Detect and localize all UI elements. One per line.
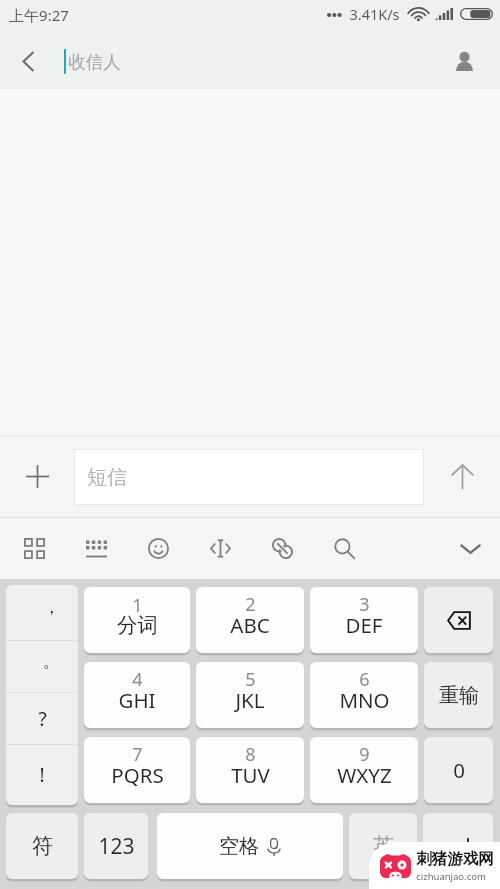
staticText: 4 [132, 667, 143, 692]
button[interactable]: 2 [196, 587, 304, 653]
other: Enter [447, 838, 469, 854]
staticText: 短信 [87, 465, 127, 490]
staticText: 1 [132, 593, 143, 618]
staticText: 3.41K/s [349, 4, 400, 24]
button[interactable]: 5 [196, 662, 304, 728]
button[interactable]: 英 [349, 813, 417, 879]
button[interactable]: Emoji [134, 518, 182, 579]
staticText: 7 [132, 742, 143, 767]
button[interactable]: 3 [310, 587, 418, 653]
staticText: 5 [245, 667, 256, 692]
button[interactable]: Add attachment [0, 436, 74, 517]
staticText: 8 [245, 742, 256, 767]
staticText: WXYZ [337, 761, 392, 789]
button[interactable]: Back [0, 34, 56, 89]
button[interactable]: Text tools [196, 518, 244, 579]
button[interactable]: 。 [6, 641, 78, 692]
button[interactable]: 6 [310, 662, 418, 728]
button[interactable]: ! [6, 745, 78, 805]
button[interactable]: Send [424, 436, 500, 517]
staticText: 。 [43, 651, 60, 672]
button[interactable]: 符 [6, 813, 78, 879]
button[interactable]: Enter [423, 813, 493, 879]
button[interactable]: 0 [424, 737, 493, 803]
button[interactable]: 短信 [74, 449, 424, 505]
staticText: 收信人 [68, 51, 121, 73]
staticText: MNO [339, 686, 390, 714]
staticText: JKL [235, 686, 265, 714]
button[interactable]: Choose contact [428, 34, 500, 89]
staticText: 上午9:27 [9, 5, 69, 25]
button[interactable]: 1 [84, 587, 190, 653]
staticText: 3 [359, 592, 370, 617]
button[interactable]: 空格 [157, 813, 343, 879]
button[interactable]: 9 [310, 737, 418, 803]
staticText: 重输 [439, 683, 479, 708]
button[interactable]: ， [6, 585, 78, 640]
button[interactable]: Hide keyboard [446, 518, 494, 579]
staticText: DEF [345, 611, 383, 639]
staticText: 0 [453, 756, 465, 784]
button[interactable]: Attach [258, 518, 306, 579]
button[interactable]: Apps [10, 518, 58, 579]
button[interactable]: Backspace [424, 587, 493, 653]
staticText: 123 [98, 832, 135, 861]
staticText: cizhuanjao.com [416, 870, 486, 883]
staticText: ， [43, 597, 60, 618]
staticText: ? [38, 706, 47, 732]
staticText: 6 [359, 667, 370, 692]
staticText: ! [39, 762, 45, 788]
staticText: 9 [359, 742, 370, 767]
staticText: ABC [230, 611, 270, 639]
staticText: 2 [245, 592, 256, 617]
staticText: PQRS [111, 761, 164, 789]
staticText: 空格 [219, 834, 259, 859]
button[interactable]: Search [320, 518, 368, 579]
button[interactable]: 重输 [424, 662, 493, 728]
button[interactable]: 123 [84, 813, 148, 879]
button[interactable]: ? [6, 693, 78, 744]
staticText: TUV [231, 761, 270, 789]
staticText: 英 [373, 833, 394, 859]
button[interactable]: 7 [84, 737, 190, 803]
button[interactable]: 8 [196, 737, 304, 803]
staticText: GHI [118, 686, 156, 714]
button[interactable]: 4 [84, 662, 190, 728]
button[interactable]: Keyboard [72, 518, 120, 579]
staticText: 分词 [117, 612, 158, 638]
staticText: 符 [32, 833, 53, 859]
staticText: 刺猪游戏网 [416, 849, 494, 869]
other: Backspace [447, 611, 471, 630]
